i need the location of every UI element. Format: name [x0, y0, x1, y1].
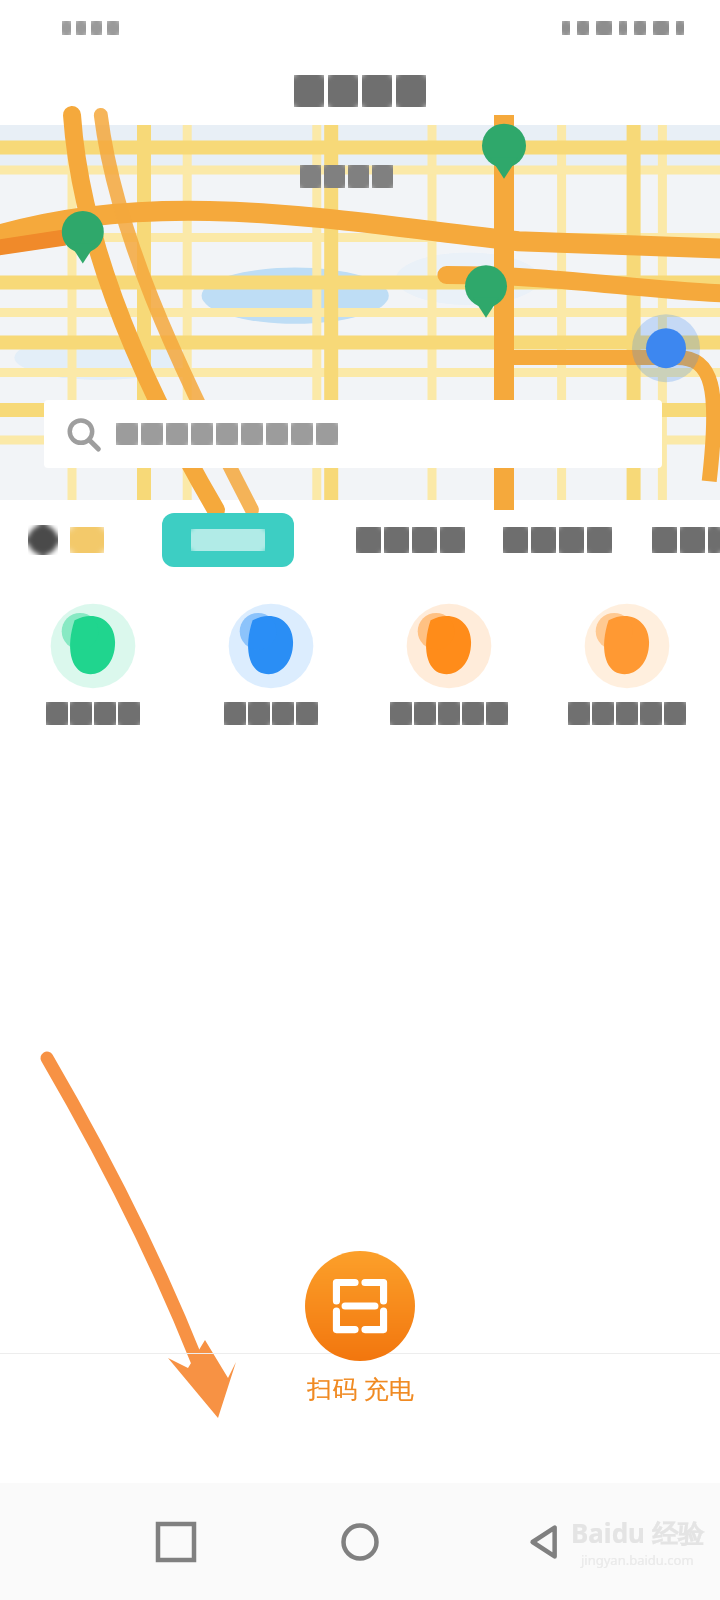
- button[interactable]: Filter: [20, 517, 66, 563]
- button[interactable]: Home: [317, 1499, 403, 1585]
- button[interactable]: Category 4: [542, 586, 712, 725]
- button[interactable]: 扫码充电: [305, 1251, 415, 1361]
- button[interactable]: Filter 4: [652, 513, 720, 567]
- button[interactable]: Category 1: [8, 586, 178, 725]
- staticText: 扫码 充电: [307, 1371, 414, 1405]
- button[interactable]: [44, 400, 662, 468]
- button[interactable]: Map: [0, 125, 720, 500]
- button[interactable]: Filter 2: [356, 513, 465, 567]
- button[interactable]: Category 2: [186, 586, 356, 725]
- staticText: jingyan.baidu.com: [581, 1551, 694, 1569]
- staticText: Baidu 经验: [571, 1515, 704, 1551]
- button[interactable]: Recents: [133, 1499, 219, 1585]
- button[interactable]: Category 3: [364, 586, 534, 725]
- button[interactable]: All stations: [162, 513, 294, 567]
- button[interactable]: Back: [501, 1499, 587, 1585]
- button[interactable]: Filter 3: [503, 513, 612, 567]
